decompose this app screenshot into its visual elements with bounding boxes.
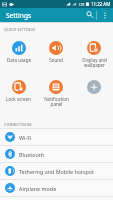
staticText: CONNECTIONS [4, 122, 32, 127]
button[interactable]: Airplane mode [0, 180, 113, 196]
staticText: Airplane mode [19, 185, 57, 192]
button[interactable]: Tethering and Mobile hotspot [0, 163, 113, 179]
button[interactable]: Display and wallpaper [75, 32, 113, 68]
staticText: Bluetooth [19, 151, 45, 158]
staticText: Sound [49, 57, 63, 63]
staticText: Display and wallpaper [82, 57, 107, 68]
staticText: 11:22 AM [91, 1, 111, 7]
button[interactable]: More options [97, 8, 113, 22]
staticText: Tethering and Mobile hotspot [19, 168, 95, 175]
button[interactable]: Bluetooth [0, 146, 113, 162]
button[interactable]: Lock screen [0, 80, 37, 102]
button[interactable]: Search [83, 8, 96, 22]
button[interactable]: Data usage [0, 32, 37, 63]
staticText: Notification panel [44, 96, 69, 107]
button[interactable] [75, 80, 113, 96]
staticText: Data usage [7, 57, 31, 63]
staticText: Wi-Fi [19, 134, 32, 141]
button[interactable]: Sound [37, 32, 75, 63]
staticText: Lock screen [6, 96, 31, 102]
staticText: Settings [6, 11, 32, 20]
button[interactable]: Notification panel [37, 80, 75, 107]
staticText: LTE [79, 2, 85, 7]
button[interactable]: Wi-Fi [0, 129, 113, 145]
staticText: QUICK SETTINGS [4, 27, 36, 32]
